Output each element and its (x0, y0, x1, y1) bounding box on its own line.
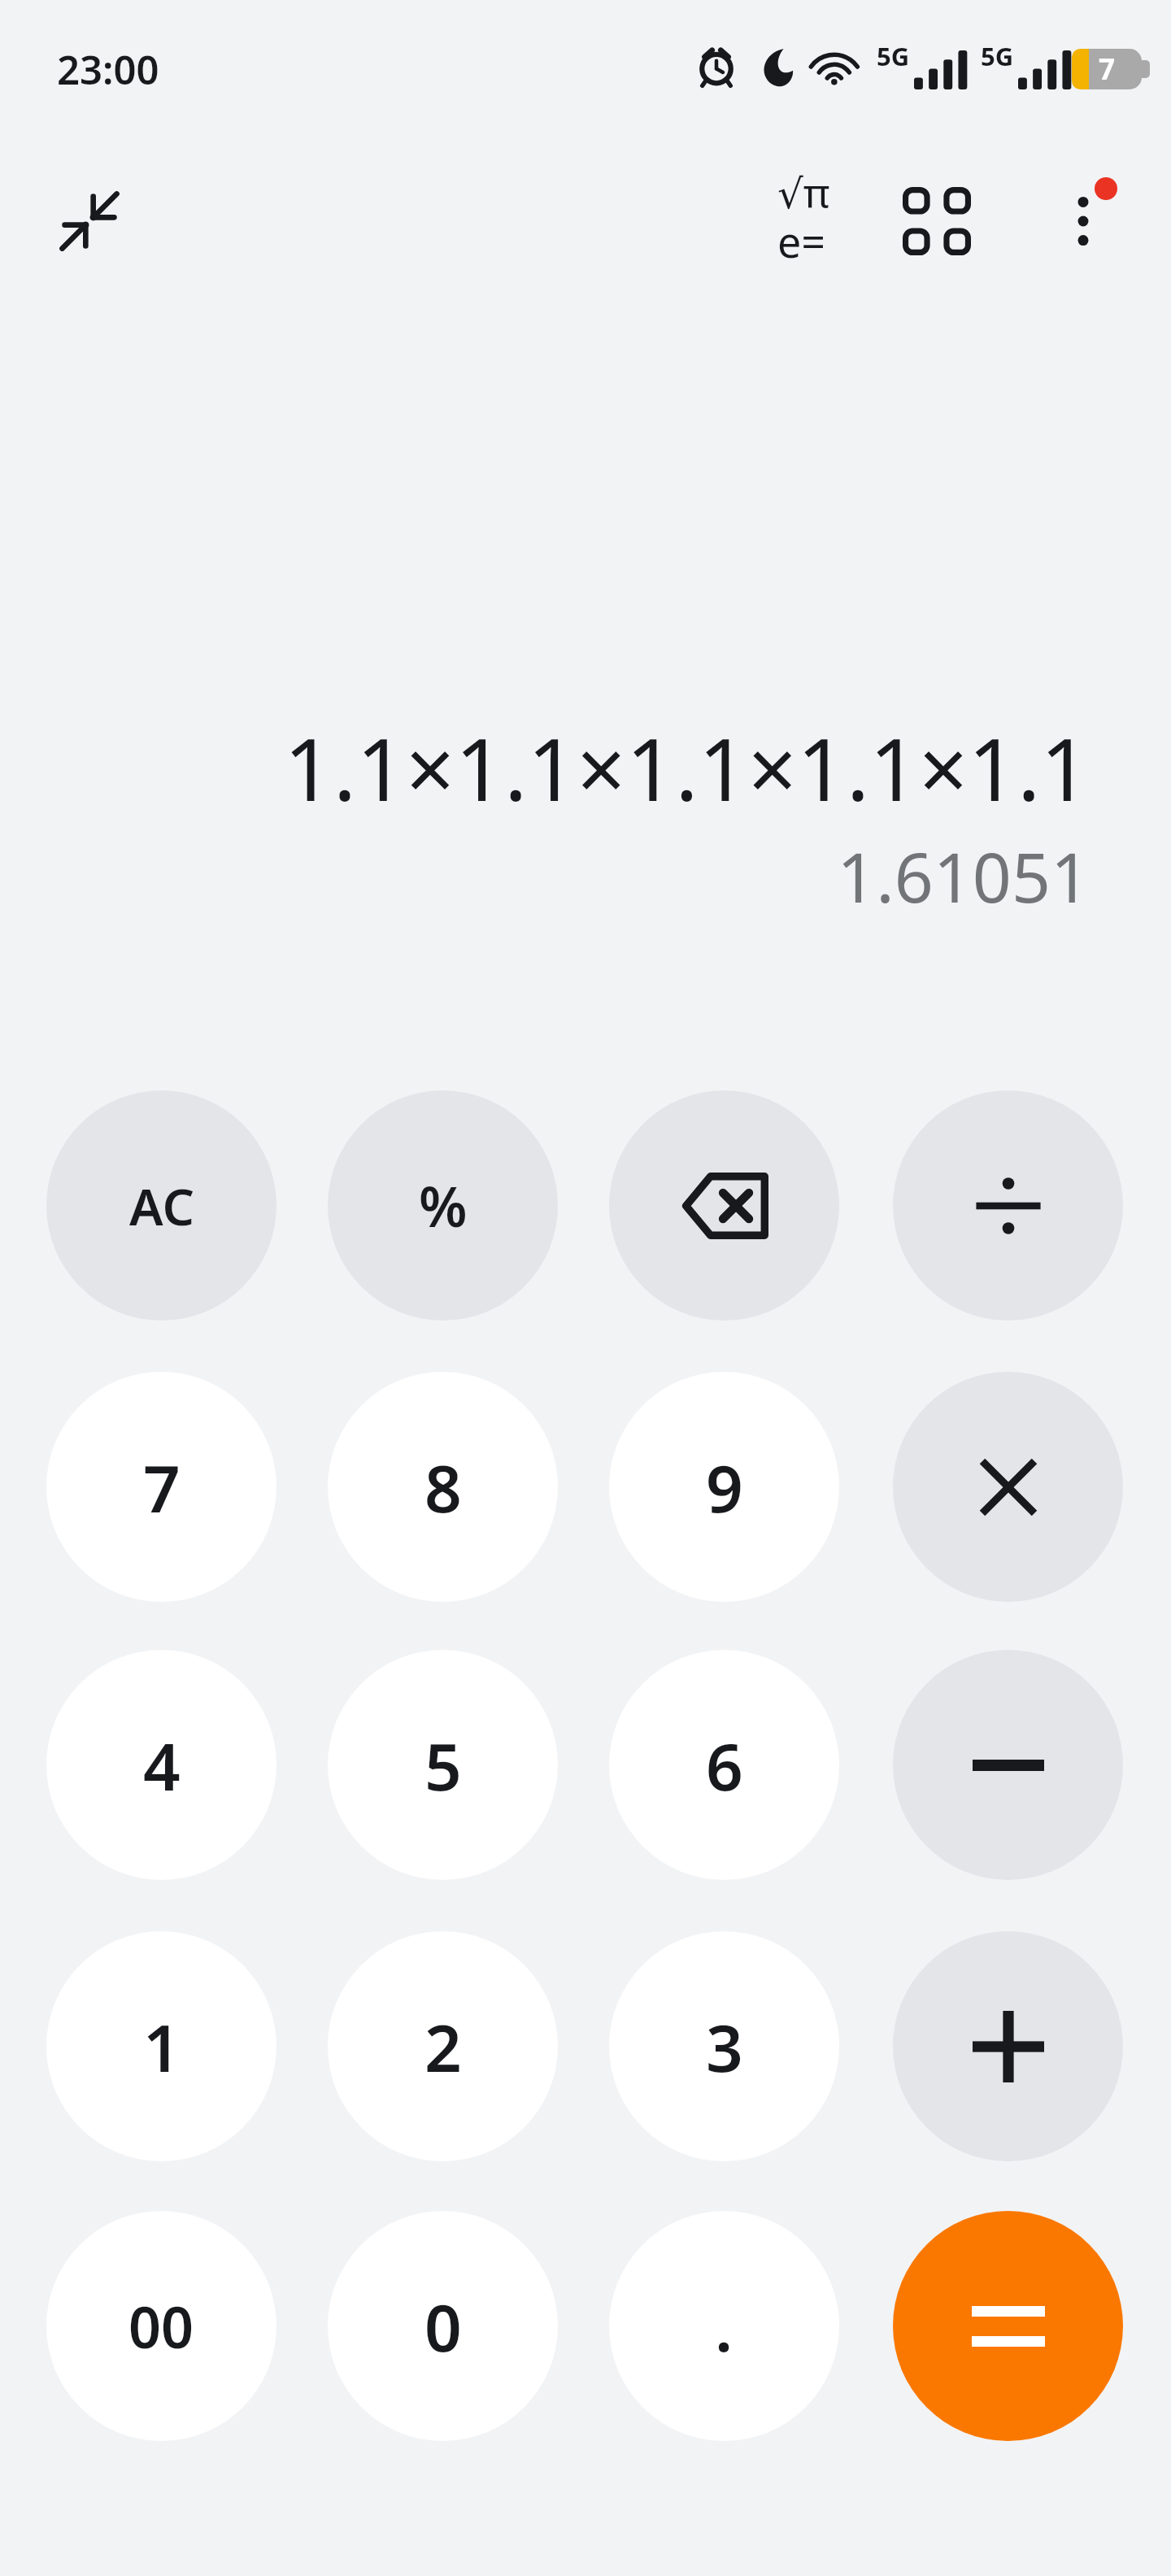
staticText: AC (129, 1172, 194, 1240)
staticText: 3 (706, 2002, 743, 2091)
button[interactable]: Collapse (28, 159, 151, 283)
staticText: 7 (143, 1442, 181, 1531)
staticText: 6 (706, 1721, 743, 1809)
staticText: 5G (981, 39, 1014, 73)
staticText: 4 (143, 1721, 181, 1809)
button[interactable]: 9 (609, 1372, 839, 1602)
button[interactable]: AC (46, 1090, 276, 1321)
button[interactable]: 00 (46, 2211, 276, 2441)
staticText: 00 (128, 2287, 194, 2365)
button[interactable]: 6 (609, 1650, 839, 1880)
staticText: 8 (424, 1442, 462, 1531)
button[interactable]: 8 (328, 1372, 558, 1602)
button[interactable]: 4 (46, 1650, 276, 1880)
staticText: % (419, 1168, 468, 1243)
button[interactable]: Minus (893, 1650, 1123, 1880)
button[interactable]: 5 (328, 1650, 558, 1880)
button[interactable]: Scientific mode (742, 159, 865, 283)
staticText: 23:00 (57, 42, 159, 97)
button[interactable]: Plus (893, 1931, 1123, 2161)
staticText: 2 (424, 2002, 462, 2091)
button[interactable]: Keypad layout (875, 159, 999, 283)
staticText: 7 (1099, 50, 1116, 89)
staticText: 1.61051 (0, 829, 1090, 922)
button[interactable]: 2 (328, 1931, 558, 2161)
staticText: 5 (424, 1721, 462, 1809)
staticText: 9 (706, 1442, 743, 1531)
button[interactable]: Divide (893, 1090, 1123, 1321)
button[interactable]: Backspace (609, 1090, 839, 1321)
staticText: 5G (877, 39, 910, 73)
button[interactable]: Percent (328, 1090, 558, 1321)
staticText: e= (777, 212, 826, 270)
staticText: . (715, 2282, 734, 2370)
button[interactable]: 0 (328, 2211, 558, 2441)
button[interactable]: Decimal point (609, 2211, 839, 2441)
button[interactable]: More options (1021, 159, 1145, 283)
staticText: 0 (424, 2282, 462, 2370)
staticText: √π (777, 165, 830, 220)
staticText: 1 (143, 2002, 181, 2091)
button[interactable]: 3 (609, 1931, 839, 2161)
button[interactable]: 7 (46, 1372, 276, 1602)
button[interactable]: Equals (893, 2211, 1123, 2441)
staticText: 1.1×1.1×1.1×1.1×1.1 (0, 709, 1090, 826)
button[interactable]: 1 (46, 1931, 276, 2161)
button[interactable]: Multiply (893, 1372, 1123, 1602)
